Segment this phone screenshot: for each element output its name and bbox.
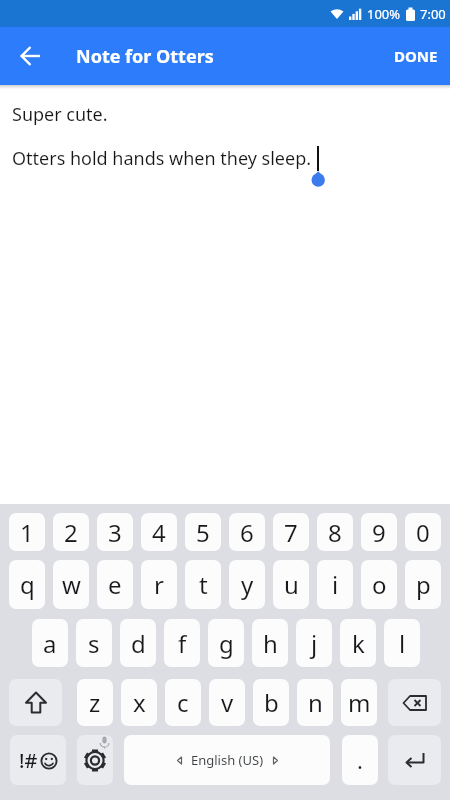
button[interactable]: DONE <box>382 27 450 85</box>
button[interactable]: a <box>32 619 68 667</box>
button[interactable]: 8 <box>317 513 353 551</box>
button[interactable]: 5 <box>185 513 221 551</box>
button[interactable]: p <box>405 560 441 609</box>
button[interactable]: r <box>141 560 177 609</box>
button[interactable]: n <box>297 679 333 726</box>
staticText: 9 <box>372 516 386 549</box>
staticText: e <box>108 568 122 601</box>
staticText: u <box>284 568 299 601</box>
button[interactable]: g <box>208 619 244 667</box>
button[interactable]: x <box>121 679 157 726</box>
staticText: k <box>352 627 365 660</box>
staticText: q <box>20 568 35 601</box>
staticText: z <box>89 686 101 719</box>
staticText: h <box>263 627 278 660</box>
button[interactable]: h <box>252 619 288 667</box>
staticText: !# <box>19 747 38 774</box>
button[interactable] <box>388 735 441 785</box>
staticText: 5 <box>196 516 210 549</box>
staticText: DONE <box>394 46 438 66</box>
button[interactable]: English (US) <box>124 735 330 785</box>
staticText: . <box>357 745 363 775</box>
staticText: y <box>241 568 254 601</box>
staticText: m <box>348 686 371 719</box>
staticText: Otters hold hands when they sleep. <box>12 146 312 171</box>
staticText: o <box>372 568 387 601</box>
button[interactable]: v <box>209 679 245 726</box>
staticText: English (US) <box>191 751 264 769</box>
staticText: d <box>131 627 146 660</box>
button[interactable]: . <box>342 735 378 785</box>
button[interactable]: t <box>185 560 221 609</box>
button[interactable]: 1 <box>9 513 45 551</box>
staticText: g <box>219 627 234 660</box>
button[interactable]: m <box>341 679 377 726</box>
staticText: v <box>221 686 234 719</box>
staticText: n <box>308 686 323 719</box>
staticText: 6 <box>240 516 254 549</box>
button[interactable]: c <box>165 679 201 726</box>
button[interactable]: z <box>77 679 113 726</box>
button[interactable]: l <box>384 619 420 667</box>
staticText: 7:00 <box>420 5 446 23</box>
staticText: a <box>43 627 57 660</box>
button[interactable]: 4 <box>141 513 177 551</box>
staticText: 3 <box>108 516 122 549</box>
staticText: f <box>178 627 187 660</box>
button[interactable]: !# <box>10 735 66 785</box>
staticText: r <box>154 568 164 601</box>
staticText: x <box>133 686 146 719</box>
button[interactable]: y <box>229 560 265 609</box>
button[interactable]: 6 <box>229 513 265 551</box>
button[interactable]: i <box>317 560 353 609</box>
staticText: 0 <box>416 516 430 549</box>
button[interactable]: s <box>76 619 112 667</box>
button[interactable]: e <box>97 560 133 609</box>
staticText: 2 <box>64 516 78 549</box>
staticText: Super cute. <box>12 102 108 127</box>
button[interactable]: w <box>53 560 89 609</box>
staticText: w <box>62 568 81 601</box>
button[interactable]: 7 <box>273 513 309 551</box>
staticText: 8 <box>328 516 342 549</box>
button[interactable]: q <box>9 560 45 609</box>
staticText: s <box>88 627 100 660</box>
button[interactable]: u <box>273 560 309 609</box>
button[interactable] <box>9 679 62 726</box>
staticText: i <box>332 568 339 601</box>
staticText: 1 <box>20 516 34 549</box>
staticText: 7 <box>284 516 298 549</box>
button[interactable]: d <box>120 619 156 667</box>
staticText: 4 <box>152 516 166 549</box>
button[interactable]: j <box>296 619 332 667</box>
button[interactable]: 3 <box>97 513 133 551</box>
button[interactable]: 0 <box>405 513 441 551</box>
button[interactable] <box>77 735 113 785</box>
button[interactable] <box>0 28 56 84</box>
button[interactable]: f <box>164 619 200 667</box>
staticText: j <box>311 627 318 660</box>
button[interactable]: o <box>361 560 397 609</box>
staticText: t <box>199 568 208 601</box>
staticText: Note for Otters <box>76 44 214 69</box>
button[interactable]: k <box>340 619 376 667</box>
staticText: c <box>177 686 189 719</box>
staticText: p <box>416 568 431 601</box>
staticText: b <box>264 686 279 719</box>
staticText: l <box>399 627 406 660</box>
button[interactable] <box>388 679 441 726</box>
button[interactable]: 2 <box>53 513 89 551</box>
button[interactable]: 9 <box>361 513 397 551</box>
button[interactable]: b <box>253 679 289 726</box>
staticText: 100% <box>367 5 401 23</box>
